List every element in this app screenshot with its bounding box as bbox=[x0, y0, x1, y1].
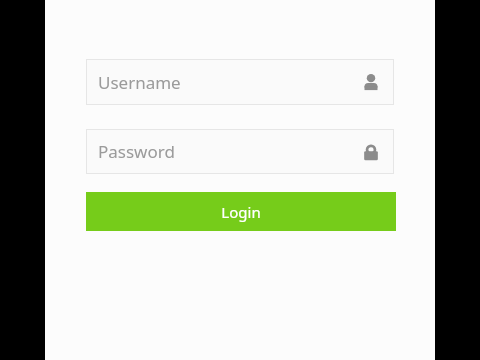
staticText: Password bbox=[98, 140, 175, 163]
button[interactable]: Username bbox=[86, 59, 394, 105]
staticText: Login bbox=[221, 202, 261, 222]
other: Password bbox=[362, 143, 380, 161]
other: Username bbox=[362, 73, 380, 91]
button[interactable]: Login bbox=[86, 192, 396, 231]
button[interactable]: Password bbox=[86, 129, 394, 174]
staticText: Username bbox=[98, 71, 181, 94]
